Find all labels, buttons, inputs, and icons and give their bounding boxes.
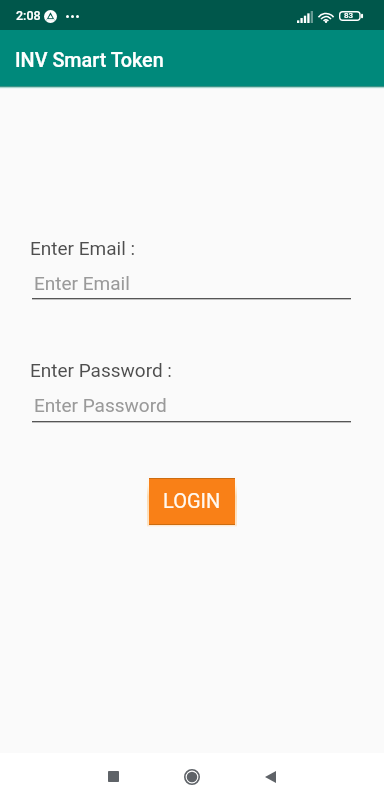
staticText: Enter Password — [34, 394, 167, 416]
button[interactable]: Back — [246, 753, 294, 800]
staticText: Enter Password : — [30, 359, 172, 381]
button[interactable]: Enter Email — [32, 268, 351, 301]
staticText: 2:08 — [16, 8, 41, 23]
staticText: Enter Email : — [30, 237, 136, 259]
staticText: INV Smart Token — [15, 49, 164, 72]
button[interactable]: LOGIN — [149, 478, 235, 525]
button[interactable]: Recent apps — [89, 753, 137, 800]
button[interactable]: Home — [168, 753, 216, 800]
staticText: LOGIN — [163, 489, 221, 512]
staticText: Enter Email — [34, 272, 130, 294]
staticText: 83 — [344, 11, 354, 20]
button[interactable]: Enter Password — [32, 390, 351, 423]
